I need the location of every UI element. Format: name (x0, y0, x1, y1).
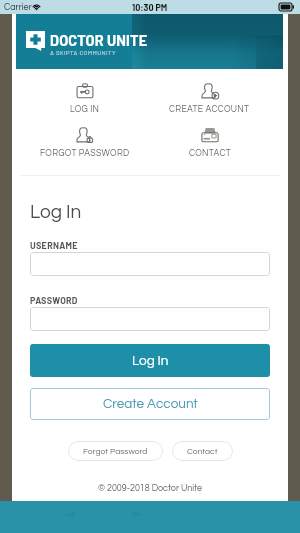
staticText: PASSWORD (30, 295, 78, 306)
staticText: © 2009-2018 Doctor Unite (30, 484, 270, 493)
button[interactable]: LOG IN (22, 83, 147, 114)
button[interactable]: Text field (30, 307, 270, 331)
staticText: 10:30 PM (132, 2, 168, 13)
staticText: A SKIPTA COMMUNITY (50, 49, 116, 56)
staticText: DOCTOR UNITE (50, 31, 148, 48)
button[interactable]: Forgot Password (68, 441, 163, 461)
staticText: Forgot Password (83, 447, 148, 456)
button[interactable]: Text field (30, 252, 270, 276)
button[interactable]: FORGOT PASSWORD (22, 127, 147, 158)
button[interactable]: CREATE ACCOUNT (147, 83, 272, 114)
staticText: FORGOT PASSWORD (40, 149, 130, 158)
staticText: Log In (30, 202, 82, 222)
staticText: LOG IN (70, 105, 100, 114)
button[interactable]: Contact (172, 441, 233, 461)
staticText: CONTACT (189, 149, 231, 158)
button[interactable]: CONTACT (147, 127, 272, 158)
button[interactable]: Create Account (30, 388, 270, 420)
staticText: Contact (187, 447, 218, 456)
staticText: Carrier (4, 3, 32, 12)
staticText: CREATE ACCOUNT (169, 105, 250, 114)
staticText: Log In (132, 354, 169, 368)
staticText: USERNAME (30, 240, 78, 251)
staticText: Create Account (103, 397, 198, 411)
button[interactable]: Log In (30, 344, 270, 377)
